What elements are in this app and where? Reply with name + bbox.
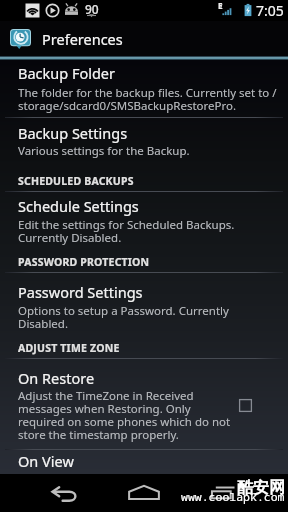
button[interactable]: Password Settings xyxy=(0,282,288,332)
staticText: www.coolapk.com xyxy=(181,489,285,505)
button[interactable]: Preferences xyxy=(0,21,288,56)
staticText: Backup Settings xyxy=(18,123,128,143)
staticText: SCHEDULED BACKUPS xyxy=(18,174,134,188)
staticText: 酷安网 xyxy=(237,478,285,498)
staticText: ADJUST TIME ZONE xyxy=(18,341,120,355)
staticText: PASSWORD PROTECTION xyxy=(18,255,150,269)
staticText: Preferences xyxy=(42,29,123,49)
button[interactable]: On Restore xyxy=(0,368,288,443)
button[interactable]: Schedule Settings xyxy=(0,196,288,246)
button[interactable]: Recent apps xyxy=(211,485,235,499)
staticText: Various settings for the Backup. xyxy=(18,143,190,159)
button[interactable]: Back xyxy=(49,486,78,502)
button[interactable]: On View xyxy=(0,451,288,471)
button[interactable]: Backup Settings xyxy=(0,123,288,159)
staticText: E xyxy=(218,0,223,11)
button[interactable]: Backup Folder xyxy=(0,63,288,114)
staticText: On View xyxy=(18,451,74,471)
staticText: Edit the settings for Scheduled Backups.… xyxy=(18,217,278,246)
staticText: 90 xyxy=(85,1,99,17)
staticText: Password Settings xyxy=(18,282,143,302)
staticText: Schedule Settings xyxy=(18,196,139,216)
staticText: 7:05 xyxy=(256,1,284,20)
button[interactable]: Home xyxy=(128,485,160,500)
staticText: On Restore xyxy=(18,368,95,388)
staticText: Options to setup a Password. Currently D… xyxy=(18,303,278,332)
staticText: Backup Folder xyxy=(18,63,116,83)
staticText: The folder for the backup files. Current… xyxy=(18,85,278,114)
staticText: Adjust the TimeZone in Received messages… xyxy=(18,388,238,443)
